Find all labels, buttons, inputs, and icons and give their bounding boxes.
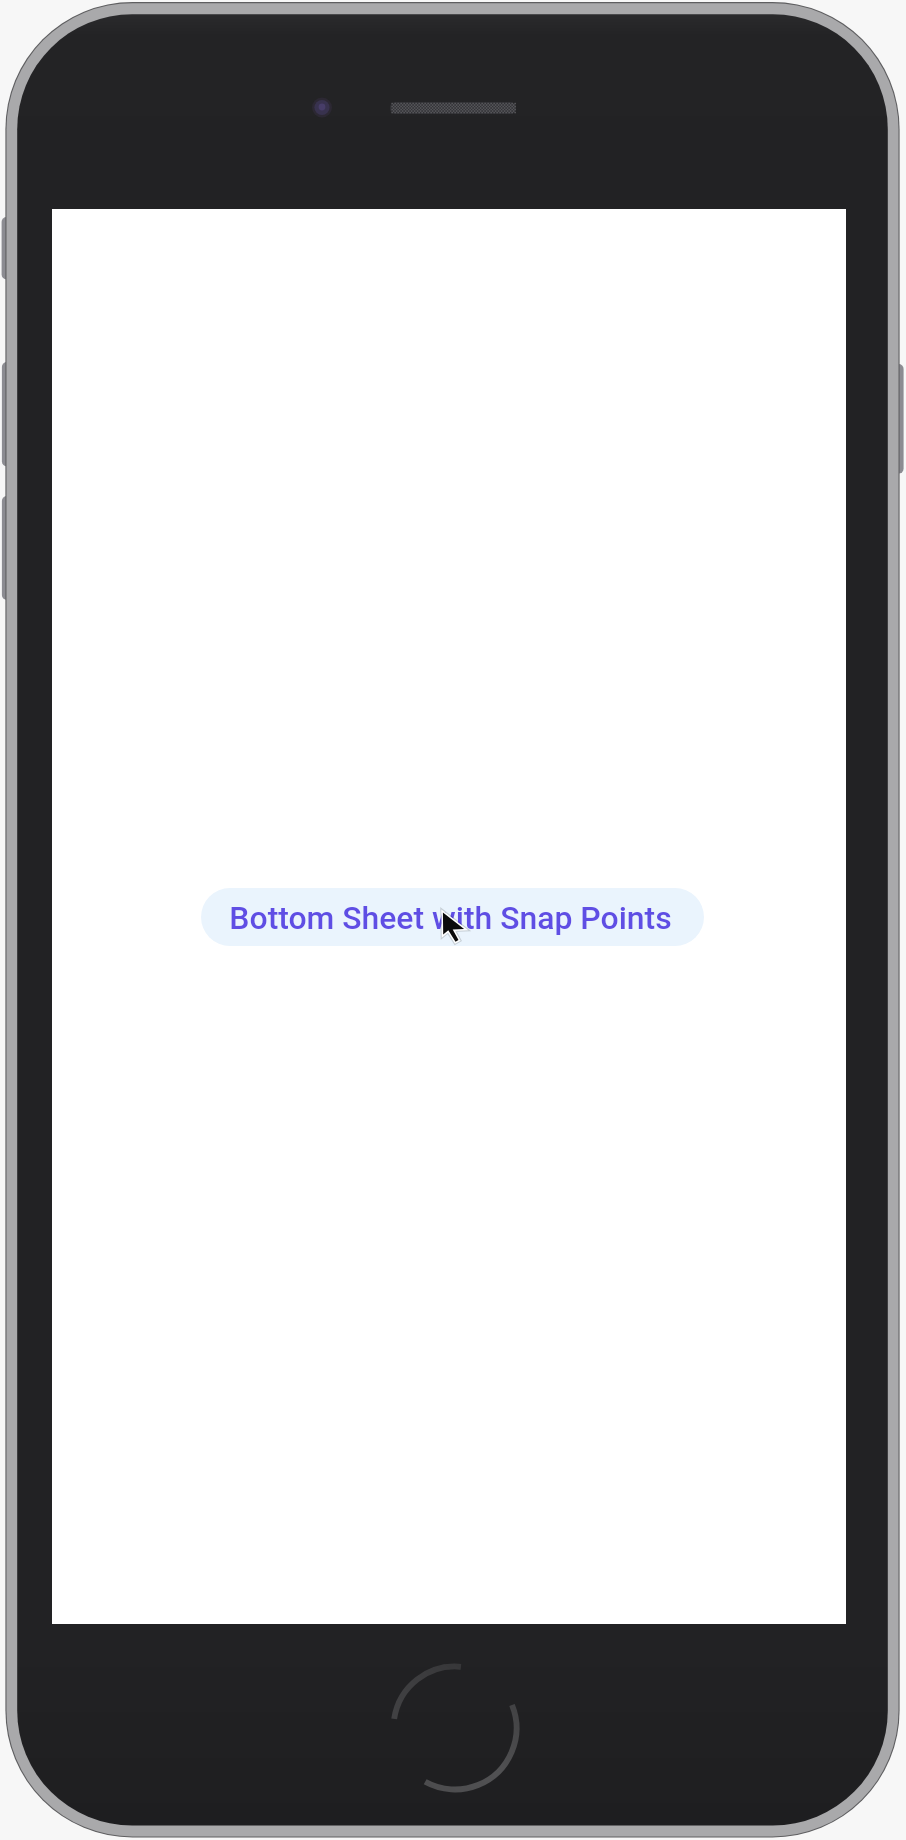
button[interactable]: Bottom Sheet with Snap Points	[201, 888, 704, 946]
staticText: Bottom Sheet with Snap Points	[229, 899, 672, 936]
